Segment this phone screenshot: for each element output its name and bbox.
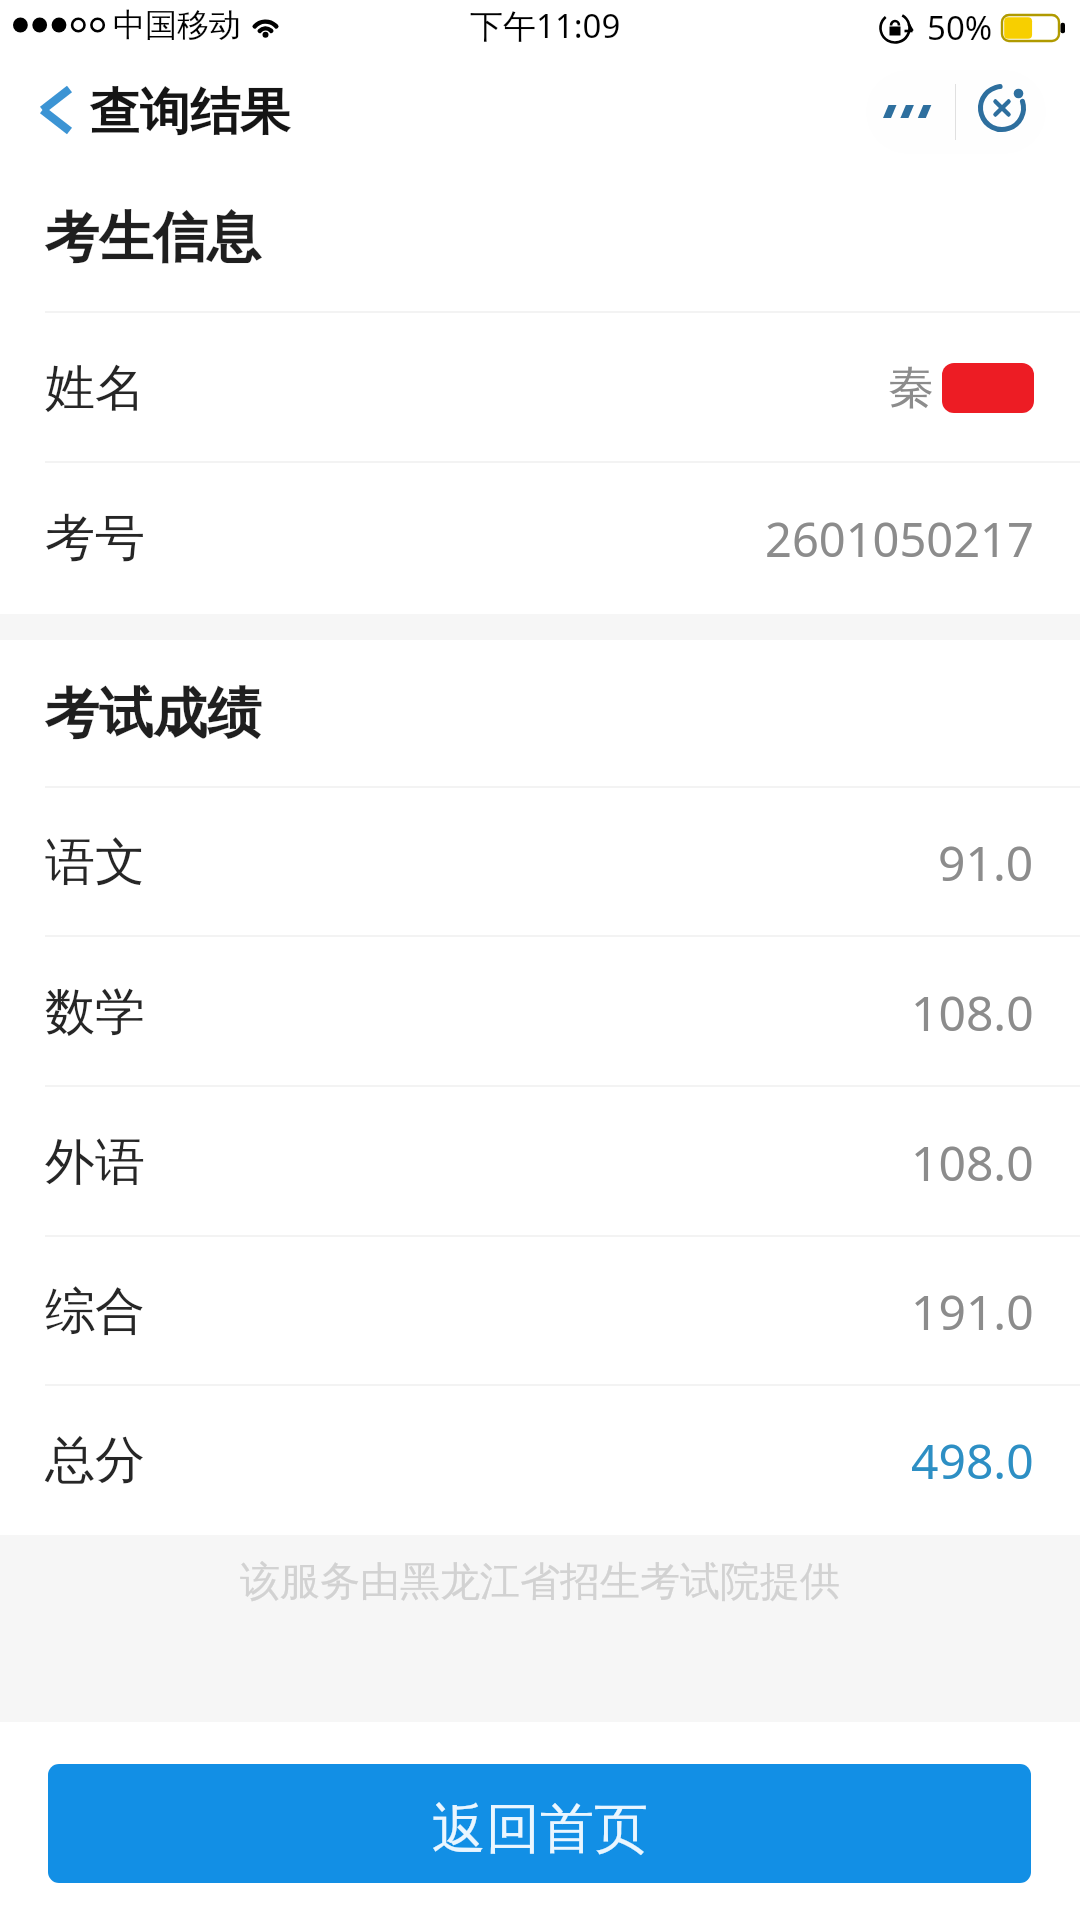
staticText: 498.0 xyxy=(911,1428,1034,1493)
staticText: 该服务由黑龙江省招生考试院提供 xyxy=(240,1556,840,1606)
button[interactable]: Back xyxy=(20,71,296,154)
staticText: 中国移动 xyxy=(113,5,241,45)
staticText: 秦 xyxy=(888,359,934,417)
button[interactable]: 总分 xyxy=(0,1386,1080,1535)
staticText: 下午11:09 xyxy=(470,3,621,48)
button[interactable]: 姓名 xyxy=(0,313,1080,463)
button[interactable]: 外语 xyxy=(0,1087,1080,1237)
staticText: 返回首页 xyxy=(432,1795,648,1863)
staticText: 2601050217 xyxy=(765,507,1034,571)
staticText: 考试成绩 xyxy=(45,680,261,748)
staticText: 数学 xyxy=(45,981,145,1044)
staticText: 姓名 xyxy=(45,357,145,420)
button[interactable]: Close xyxy=(962,70,1046,154)
staticText: 50% xyxy=(927,5,993,50)
button[interactable]: More options xyxy=(866,70,956,154)
staticText: 外语 xyxy=(45,1131,145,1194)
button[interactable]: 综合 xyxy=(0,1237,1080,1386)
button[interactable]: 语文 xyxy=(0,788,1080,937)
staticText: 91.0 xyxy=(938,830,1034,895)
staticText: 考生信息 xyxy=(45,204,261,272)
button[interactable]: 考号 xyxy=(0,463,1080,614)
staticText: 语文 xyxy=(45,831,145,894)
staticText: 总分 xyxy=(45,1429,145,1492)
staticText: 考号 xyxy=(45,507,145,570)
button[interactable]: 数学 xyxy=(0,937,1080,1087)
button[interactable]: 返回首页 xyxy=(48,1764,1031,1883)
staticText: 191.0 xyxy=(911,1279,1034,1344)
staticText: 108.0 xyxy=(911,980,1034,1045)
staticText: 综合 xyxy=(45,1280,145,1343)
staticText: 108.0 xyxy=(911,1130,1034,1195)
staticText: 查询结果 xyxy=(90,81,290,144)
